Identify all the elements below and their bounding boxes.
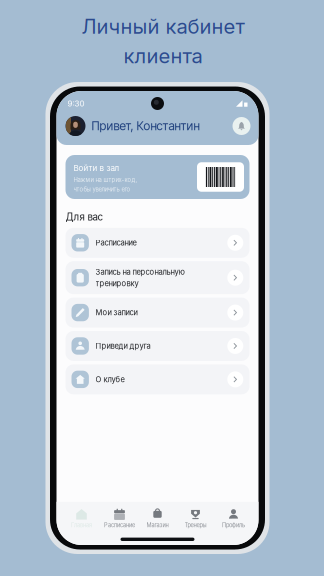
staticText: Привет, Константин — [91, 119, 199, 133]
staticText: 9:30 — [67, 99, 84, 108]
staticText: Нажми на штрих-код, — [73, 176, 137, 183]
staticText: тренировку — [95, 279, 138, 288]
button[interactable]: Уведомления — [232, 117, 250, 135]
staticText: Запись на персональную — [95, 267, 184, 276]
staticText: Расписание — [95, 238, 136, 247]
staticText: Главная — [71, 522, 92, 529]
staticText: Профиль — [222, 522, 245, 529]
button[interactable]: Войти в зал — [65, 155, 249, 199]
button[interactable]: Запись на персональную — [65, 261, 249, 294]
staticText: Магазин — [146, 522, 168, 529]
staticText: клиента — [123, 43, 202, 68]
staticText: Личный кабинет — [81, 14, 244, 38]
button[interactable]: Магазин — [138, 509, 176, 529]
staticText: Для вас — [65, 211, 103, 223]
staticText: Приведи друга — [95, 341, 150, 351]
button[interactable]: Приведи друга — [65, 331, 249, 361]
button[interactable]: Мои записи — [65, 298, 249, 328]
button[interactable]: Тренеры — [176, 509, 214, 529]
button[interactable]: Расписание — [100, 509, 138, 529]
staticText: Расписание — [104, 522, 135, 529]
button[interactable]: Главная — [62, 509, 100, 529]
staticText: О клубе — [95, 375, 124, 384]
button[interactable]: Расписание — [65, 228, 249, 258]
staticText: чтобы увеличить его — [73, 186, 130, 193]
staticText: Войти в зал — [73, 163, 119, 173]
button[interactable]: О клубе — [65, 364, 249, 394]
staticText: Мои записи — [95, 308, 137, 317]
button[interactable]: Профиль — [214, 509, 252, 529]
staticText: Тренеры — [184, 522, 206, 529]
